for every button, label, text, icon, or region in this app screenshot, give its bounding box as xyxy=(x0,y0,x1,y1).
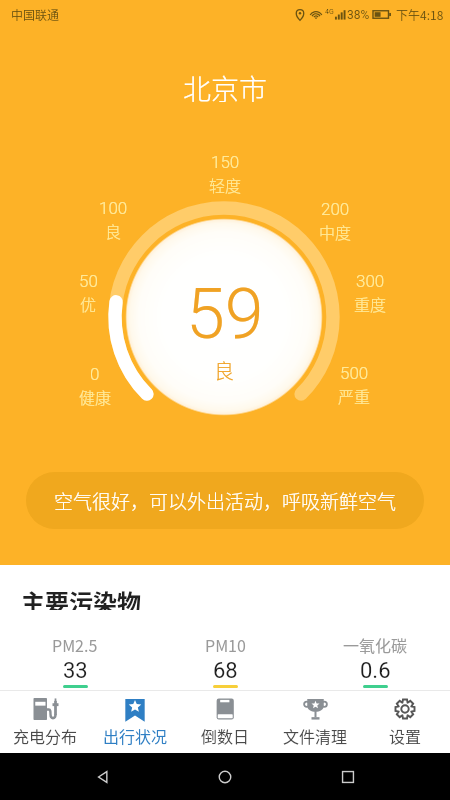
staticText: 4G xyxy=(325,8,334,16)
staticText: 59 xyxy=(186,273,264,355)
staticText: PM10 xyxy=(205,633,246,655)
other: 文件清理 xyxy=(303,697,328,721)
button[interactable]: Recents xyxy=(328,757,368,797)
button[interactable]: PM2.5 xyxy=(0,630,150,692)
button[interactable]: PM10 xyxy=(150,630,300,692)
button[interactable]: Back xyxy=(83,757,123,797)
staticText: 充电分布 xyxy=(13,724,78,746)
button[interactable]: 充电分布 xyxy=(0,691,90,753)
other: 充电分布 xyxy=(33,697,58,721)
staticText: 一氧化碳 xyxy=(343,633,408,655)
staticText: 500 xyxy=(340,363,369,383)
staticText: 轻度 xyxy=(209,173,242,196)
button[interactable]: 出行状况 xyxy=(90,691,180,753)
button[interactable]: 一氧化碳 xyxy=(300,630,450,692)
staticText: 倒数日 xyxy=(201,724,250,746)
staticText: 0 xyxy=(90,364,100,384)
button[interactable]: Home xyxy=(205,757,245,797)
staticText: 0.6 xyxy=(360,658,391,684)
staticText: 北京市 xyxy=(183,68,268,102)
staticText: 空气很好，可以外出活动，呼吸新鲜空气 xyxy=(54,487,397,515)
staticText: 200 xyxy=(321,199,350,219)
staticText: 文件清理 xyxy=(283,724,348,746)
staticText: 68 xyxy=(213,658,238,684)
staticText: 严重 xyxy=(338,384,371,407)
staticText: 38% xyxy=(347,8,370,22)
staticText: 下午4:18 xyxy=(396,6,444,23)
button[interactable]: 设置 xyxy=(360,691,450,753)
staticText: 33 xyxy=(63,658,88,684)
staticText: 中国联通 xyxy=(11,6,60,23)
staticText: 100 xyxy=(99,198,128,218)
staticText: 出行状况 xyxy=(103,724,168,746)
staticText: 优 xyxy=(80,292,97,315)
button[interactable]: 文件清理 xyxy=(270,691,360,753)
staticText: 重度 xyxy=(354,292,387,315)
other: 出行状况 xyxy=(124,697,146,722)
staticText: 中度 xyxy=(319,220,352,243)
staticText: 150 xyxy=(211,152,240,172)
staticText: 主要污染物 xyxy=(21,584,141,610)
staticText: PM2.5 xyxy=(52,633,98,655)
staticText: 健康 xyxy=(79,385,112,408)
staticText: 300 xyxy=(356,271,385,291)
other: 倒数日 xyxy=(214,697,236,721)
button[interactable]: 倒数日 xyxy=(180,691,270,753)
staticText: 良 xyxy=(105,219,122,242)
staticText: 良 xyxy=(214,356,234,382)
staticText: 50 xyxy=(79,271,98,291)
other: 设置 xyxy=(393,697,417,721)
button[interactable]: 空气很好，可以外出活动，呼吸新鲜空气 xyxy=(26,472,424,529)
staticText: 设置 xyxy=(389,724,422,746)
